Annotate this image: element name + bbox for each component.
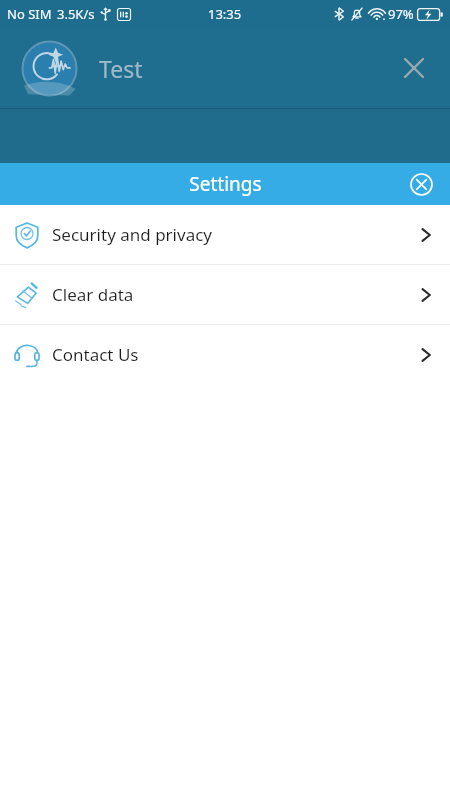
staticText: No SIM [7, 5, 52, 23]
staticText: Clear data [52, 283, 134, 306]
button[interactable]: Contact Us [0, 325, 450, 384]
staticText: 97% [388, 5, 414, 23]
staticText: Settings [189, 171, 262, 197]
staticText: 3.5K/s [57, 5, 95, 23]
staticText: Security and privacy [52, 223, 213, 246]
staticText: Test [99, 53, 143, 84]
staticText: 13:35 [208, 5, 242, 23]
button[interactable]: Clear data [0, 265, 450, 324]
button[interactable]: Security and privacy [0, 205, 450, 264]
button[interactable]: Close [392, 46, 436, 90]
button[interactable]: Close settings [402, 165, 440, 203]
staticText: Contact Us [52, 343, 139, 366]
